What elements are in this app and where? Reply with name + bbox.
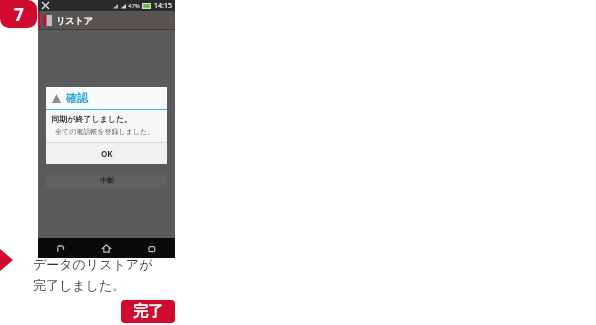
staticText: データのリストアが xyxy=(33,256,153,272)
staticText: 47% xyxy=(128,2,140,10)
button[interactable]: 中断 xyxy=(46,173,167,188)
staticText: リストア xyxy=(56,15,93,26)
button[interactable]: Back xyxy=(38,238,83,258)
staticText: 中断 xyxy=(100,176,114,185)
button[interactable]: Recent apps xyxy=(129,238,175,258)
staticText: 7 xyxy=(14,3,24,26)
staticText: OK xyxy=(101,148,113,159)
staticText: 全ての電話帳を登録しました。 xyxy=(55,127,155,136)
button[interactable]: Home xyxy=(83,238,129,258)
staticText: 14:15 xyxy=(154,1,172,11)
button[interactable]: OK xyxy=(46,143,167,164)
staticText: 同期が終了しました。 xyxy=(51,114,132,124)
button[interactable]: 完了 xyxy=(121,300,175,323)
staticText: 完了しました。 xyxy=(33,277,126,293)
staticText: 完了 xyxy=(133,302,163,321)
staticText: 確認 xyxy=(66,91,88,105)
